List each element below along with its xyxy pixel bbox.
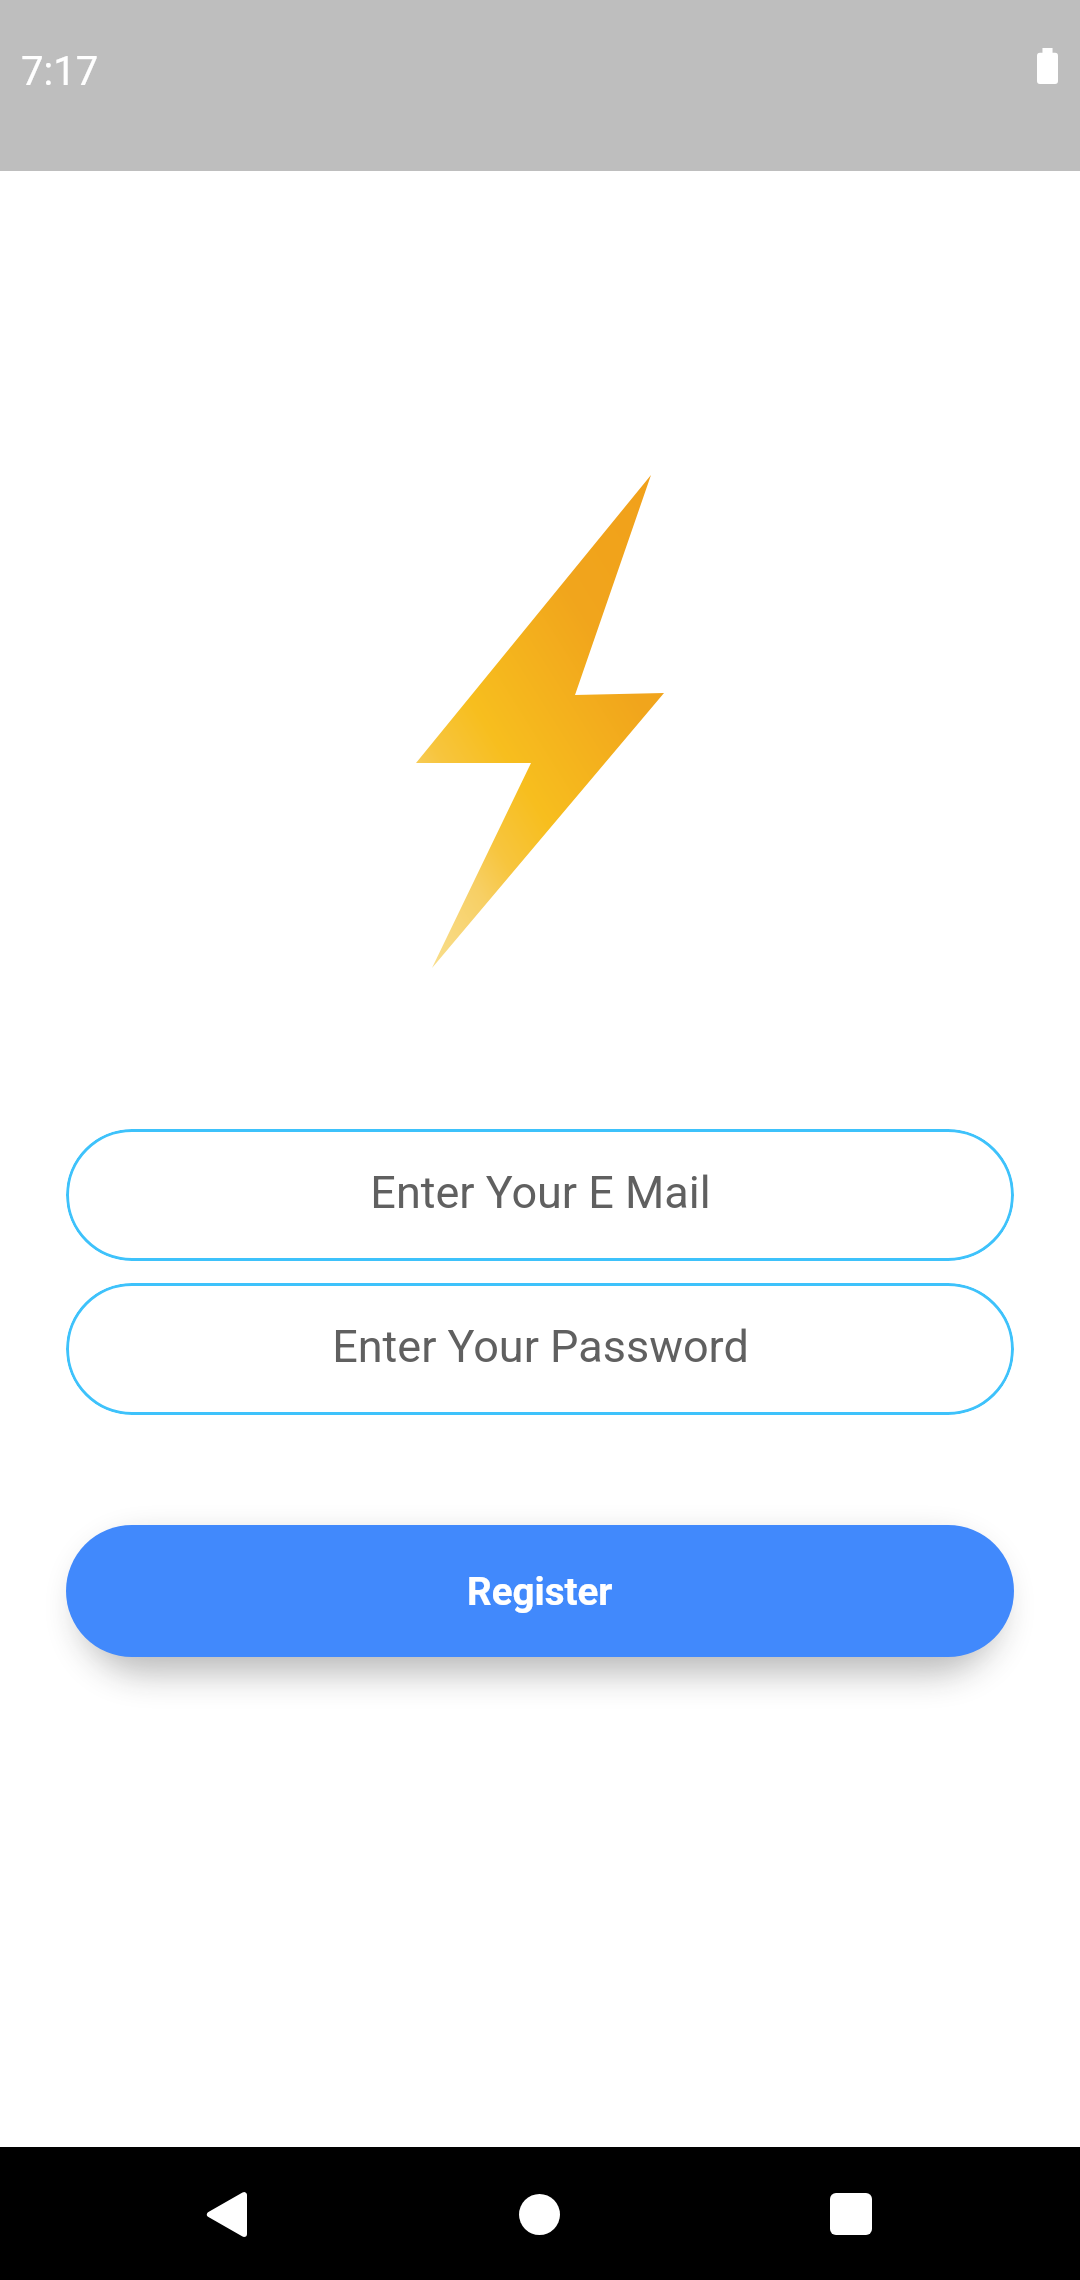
button[interactable]: Enter Your Password: [66, 1283, 1014, 1415]
button[interactable]: Recent apps: [811, 2174, 891, 2254]
staticText: Enter Your E Mail: [370, 1166, 711, 1219]
staticText: Register: [467, 1569, 613, 1614]
button[interactable]: Enter Your E Mail: [66, 1129, 1014, 1261]
other: Battery: [1037, 48, 1058, 84]
other: App logo: [416, 475, 664, 968]
button[interactable]: Register: [66, 1525, 1014, 1657]
button[interactable]: Back: [186, 2174, 266, 2254]
staticText: Enter Your Password: [332, 1320, 749, 1373]
button[interactable]: Home: [499, 2174, 579, 2254]
staticText: 7:17: [21, 48, 99, 95]
